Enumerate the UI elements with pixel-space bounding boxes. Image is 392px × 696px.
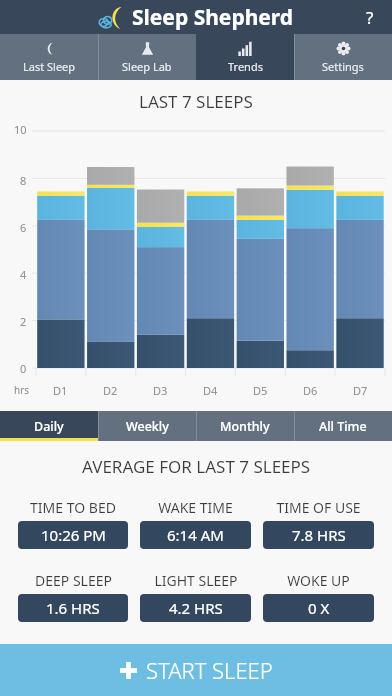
staticText: D2 [103, 383, 118, 398]
staticText: Trends [228, 59, 263, 74]
staticText: Sleep Shepherd [132, 3, 294, 32]
staticText: WOKE UP [287, 571, 350, 590]
button[interactable]: All Time [294, 411, 392, 441]
button[interactable]: Help [356, 3, 384, 31]
staticText: D3 [153, 383, 168, 398]
button[interactable]: 4.2 HRS [140, 594, 251, 622]
staticText: Last Sleep [23, 59, 76, 74]
staticText: Settings [322, 59, 364, 74]
staticText: 8 [20, 173, 27, 188]
staticText: 4.2 HRS [169, 598, 223, 618]
button[interactable]: 0 X [263, 594, 374, 622]
staticText: 1.6 HRS [46, 598, 100, 618]
button[interactable]: Monthly [196, 411, 294, 441]
staticText: AVERAGE FOR LAST 7 SLEEPS [82, 455, 311, 478]
staticText: Monthly [220, 418, 270, 435]
button[interactable]: 10:26 PM [18, 521, 128, 549]
staticText: 10:26 PM [41, 525, 106, 545]
staticText: 0 [20, 361, 27, 376]
staticText: 6:14 AM [167, 525, 224, 545]
staticText: D5 [253, 383, 268, 398]
staticText: 7.8 HRS [292, 525, 346, 545]
staticText: 2 [20, 314, 27, 329]
button[interactable]: Sleep Lab [98, 34, 196, 80]
staticText: D7 [353, 383, 368, 398]
staticText: Daily [34, 418, 64, 435]
staticText: 4 [20, 267, 27, 282]
staticText: All Time [319, 418, 367, 435]
staticText: 0 X [308, 598, 330, 618]
staticText: Weekly [126, 418, 169, 435]
staticText: START SLEEP [146, 655, 273, 685]
staticText: LAST 7 SLEEPS [139, 90, 253, 113]
staticText: 10 [14, 122, 27, 137]
staticText: TIME TO BED [30, 498, 116, 517]
staticText: ? [366, 6, 374, 29]
staticText: 6 [20, 220, 27, 235]
button[interactable]: Weekly [98, 411, 196, 441]
staticText: hrs [14, 383, 30, 397]
button[interactable]: 6:14 AM [140, 521, 251, 549]
staticText: DEEP SLEEP [35, 571, 112, 590]
staticText: TIME OF USE [276, 498, 361, 517]
staticText: D1 [53, 383, 68, 398]
button[interactable]: 1.6 HRS [18, 594, 128, 622]
button[interactable]: Trends [196, 34, 294, 80]
staticText: WAKE TIME [158, 498, 233, 517]
button[interactable]: 7.8 HRS [263, 521, 374, 549]
button[interactable]: START SLEEP [0, 644, 392, 696]
button[interactable]: Settings [294, 34, 392, 80]
button[interactable]: Daily [0, 411, 98, 441]
staticText: D4 [203, 383, 218, 398]
staticText: Sleep Lab [122, 59, 172, 74]
staticText: D6 [303, 383, 318, 398]
staticText: LIGHT SLEEP [154, 571, 238, 590]
button[interactable]: Last Sleep [0, 34, 98, 80]
